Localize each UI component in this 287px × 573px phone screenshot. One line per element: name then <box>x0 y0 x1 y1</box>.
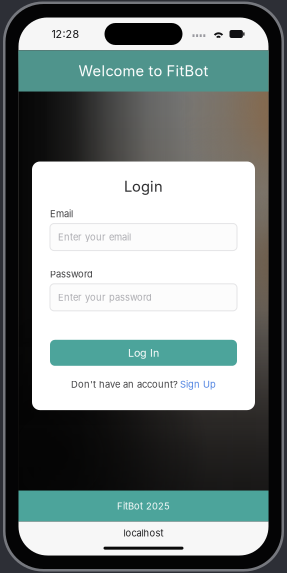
staticText: 12:28 <box>51 27 79 40</box>
staticText: Password <box>50 268 93 280</box>
staticText: Welcome to FitBot <box>78 62 208 80</box>
staticText: Sign Up <box>180 379 216 390</box>
button[interactable]: Log In <box>50 340 237 366</box>
staticText: Log In <box>128 346 159 359</box>
staticText: FitBot 2025 <box>117 500 170 512</box>
staticText: Email <box>50 208 73 219</box>
button[interactable]: Don't have an account? <box>50 379 237 390</box>
staticText: Don't have an account? <box>71 379 178 390</box>
staticText: localhost <box>123 527 163 539</box>
staticText: Enter your email <box>58 231 131 243</box>
button[interactable]: localhost <box>123 527 163 539</box>
staticText: Login <box>124 177 163 195</box>
staticText: Enter your password <box>58 292 152 303</box>
